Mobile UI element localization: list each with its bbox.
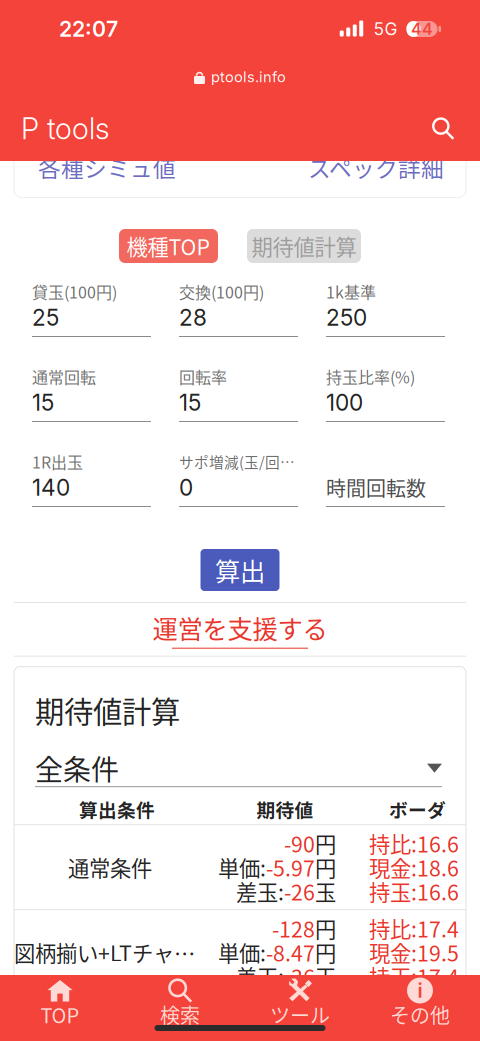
- staticText: 貸玉(100円): [32, 280, 117, 303]
- button[interactable]: i: [360, 975, 480, 1027]
- staticText: スペック詳細: [308, 151, 444, 183]
- staticText: 通常条件: [68, 852, 152, 883]
- staticText: 持玉比率(%): [326, 365, 415, 388]
- button[interactable]: 算出: [200, 549, 279, 591]
- button[interactable]: ツール: [240, 975, 360, 1027]
- staticText: サポ増減(玉/回…: [179, 451, 295, 472]
- button[interactable]: TOP: [0, 975, 120, 1027]
- staticText: -5.97: [266, 852, 315, 883]
- staticText: 単価:: [218, 937, 266, 968]
- staticText: 現金:18.6: [369, 852, 459, 883]
- staticText: 円: [315, 913, 336, 944]
- button[interactable]: 検索: [120, 975, 240, 1027]
- staticText: TOP: [40, 1000, 79, 1029]
- staticText: i: [417, 978, 422, 1003]
- staticText: 差玉:: [236, 961, 284, 992]
- staticText: 機種TOP: [126, 231, 210, 261]
- staticText: -128: [272, 913, 315, 944]
- button[interactable]: Search: [418, 103, 468, 153]
- staticText: 1R出玉: [32, 450, 83, 473]
- button[interactable]: P tools: [0, 101, 109, 156]
- staticText: 15: [179, 389, 201, 416]
- button[interactable]: スペック詳細: [308, 151, 444, 183]
- staticText: 各種シミュ値: [38, 151, 176, 183]
- staticText: -8.47: [266, 937, 315, 968]
- staticText: 100: [326, 389, 363, 416]
- staticText: 持玉:17.4: [369, 961, 459, 992]
- staticText: ボーダ: [389, 796, 446, 823]
- staticText: 回転率: [179, 365, 227, 388]
- staticText: 期待値計算: [35, 689, 180, 731]
- button[interactable]: 運営を支援する: [152, 605, 327, 653]
- staticText: 250: [326, 304, 367, 331]
- staticText: 期待値: [256, 796, 313, 823]
- staticText: 算出: [215, 552, 265, 588]
- staticText: 5G: [373, 18, 397, 39]
- staticText: 44: [411, 19, 433, 39]
- staticText: 期待値計算: [251, 231, 356, 261]
- staticText: 15: [32, 389, 54, 416]
- staticText: 玉: [315, 961, 336, 992]
- staticText: 時間回転数: [326, 473, 426, 502]
- staticText: 運営を支援する: [152, 609, 327, 646]
- staticText: ptools.info: [211, 68, 286, 86]
- staticText: 22:07: [59, 16, 118, 42]
- staticText: 図柄揃い+LTチャージ: [14, 937, 206, 968]
- staticText: 玉: [315, 876, 336, 907]
- staticText: 持比:16.6: [369, 828, 459, 859]
- button[interactable]: 期待値計算: [247, 229, 361, 263]
- staticText: 円: [315, 937, 336, 968]
- staticText: ツール: [270, 1000, 330, 1029]
- staticText: 交換(100円): [179, 280, 264, 303]
- staticText: 持玉:16.6: [369, 876, 459, 907]
- button[interactable]: 機種TOP: [119, 229, 218, 263]
- staticText: 算出条件: [79, 796, 155, 823]
- staticText: 円: [315, 828, 336, 859]
- staticText: 28: [179, 304, 207, 331]
- staticText: 差玉:: [236, 876, 284, 907]
- staticText: 単価:: [218, 852, 266, 883]
- staticText: P tools: [21, 111, 109, 146]
- staticText: 全条件: [35, 748, 119, 788]
- staticText: -36: [284, 961, 315, 992]
- staticText: 140: [32, 474, 70, 501]
- staticText: 円: [315, 852, 336, 883]
- staticText: 25: [32, 304, 59, 331]
- staticText: 現金:19.5: [369, 937, 459, 968]
- staticText: 通常回転: [32, 365, 96, 388]
- button[interactable]: 各種シミュ値: [38, 151, 176, 183]
- staticText: 0: [179, 474, 193, 501]
- staticText: -90: [284, 828, 315, 859]
- staticText: 検索: [160, 1000, 200, 1029]
- staticText: -26: [284, 876, 315, 907]
- staticText: 持比:17.4: [369, 913, 459, 944]
- staticText: その他: [390, 1000, 450, 1029]
- staticText: 1k基準: [326, 280, 376, 303]
